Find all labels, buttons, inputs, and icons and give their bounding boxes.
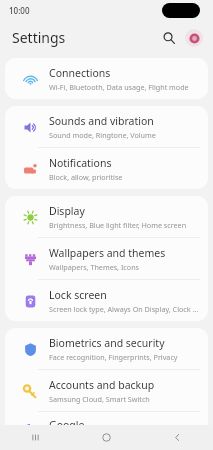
button[interactable]: Lock screen xyxy=(5,280,208,321)
staticText: 10:00 xyxy=(9,5,30,16)
button[interactable]: Wallpapers and themes xyxy=(5,238,208,279)
staticText: Lock screen xyxy=(49,288,107,302)
staticText: Face recognition, Fingerprints, Privacy xyxy=(49,352,178,362)
staticText: Screen lock type, Always On Display, Clo… xyxy=(49,304,200,314)
button[interactable]: Biometrics and security xyxy=(5,328,208,369)
staticText: Notifications xyxy=(49,156,112,170)
staticText: Sound mode, Ringtone, Volume xyxy=(49,130,156,140)
staticText: Biometrics and security xyxy=(49,336,165,350)
button[interactable]: Back xyxy=(142,425,213,450)
staticText: Wi-Fi, Bluetooth, Data usage, Flight mod… xyxy=(49,82,189,92)
button[interactable]: Account xyxy=(185,29,203,47)
staticText: Brightness, Blue light filter, Home scre… xyxy=(49,220,187,230)
staticText: Settings xyxy=(12,28,66,47)
staticText: Connections xyxy=(49,66,111,80)
button[interactable]: Notifications xyxy=(5,148,208,189)
staticText: Block, allow, prioritise xyxy=(49,172,123,182)
button[interactable]: Sounds and vibration xyxy=(5,106,208,147)
staticText: Display xyxy=(49,204,85,218)
staticText: Sounds and vibration xyxy=(49,114,154,128)
staticText: Wallpapers and themes xyxy=(49,246,166,260)
staticText: Samsung Cloud, Smart Switch xyxy=(49,394,150,404)
button[interactable]: Recents xyxy=(0,425,71,450)
staticText: Wallpapers, Themes, Icons xyxy=(49,262,140,272)
button[interactable]: Google xyxy=(5,412,208,450)
button[interactable]: Accounts and backup xyxy=(5,370,208,411)
button[interactable]: Search xyxy=(158,27,180,49)
button[interactable]: Connections xyxy=(5,58,208,99)
button[interactable]: Display xyxy=(5,196,208,237)
staticText: Google xyxy=(49,418,85,432)
staticText: Accounts and backup xyxy=(49,378,155,392)
button[interactable]: Home xyxy=(71,425,142,450)
